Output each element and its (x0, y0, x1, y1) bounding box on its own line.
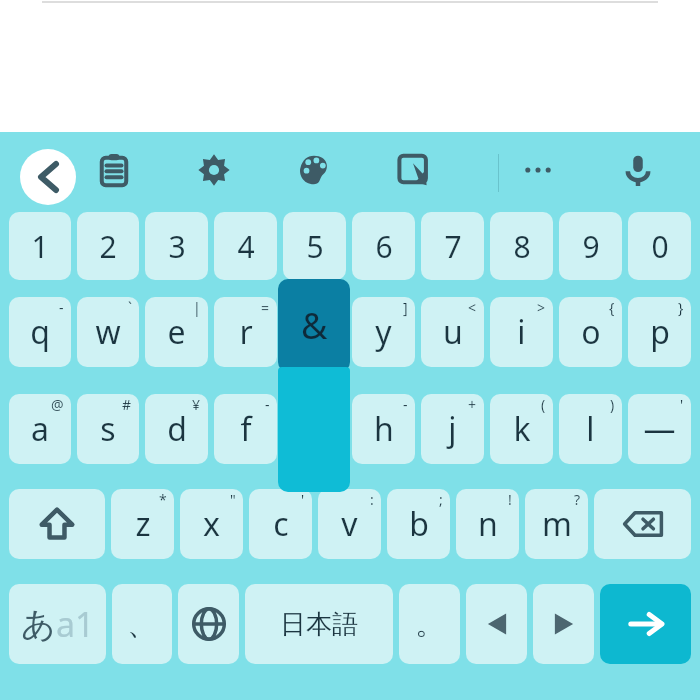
button[interactable]: q (9, 297, 71, 367)
button[interactable]: m (525, 489, 588, 559)
staticText: h (374, 407, 394, 451)
staticText: # (122, 395, 132, 414)
staticText: { (609, 298, 615, 317)
button[interactable]: h (352, 394, 415, 464)
button[interactable]: e (145, 297, 208, 367)
staticText: - (403, 395, 408, 414)
staticText: 5 (306, 226, 324, 267)
button[interactable]: Themes (288, 144, 340, 196)
button[interactable]: z (111, 489, 174, 559)
button[interactable]: x (180, 489, 243, 559)
staticText: u (443, 310, 463, 354)
staticText: l (586, 407, 595, 451)
staticText: z (135, 502, 151, 546)
staticText: @ (51, 395, 64, 414)
button[interactable]: j (421, 394, 484, 464)
button[interactable]: Move cursor right (533, 584, 594, 664)
button[interactable]: Settings (188, 144, 240, 196)
staticText: 1 (31, 226, 49, 267)
button[interactable]: — (628, 394, 691, 464)
button[interactable]: s (77, 394, 139, 464)
staticText: ) (610, 395, 615, 414)
staticText: a1 (56, 601, 95, 647)
staticText: j (448, 407, 457, 451)
button[interactable]: v (318, 489, 381, 559)
button[interactable]: u (421, 297, 484, 367)
staticText: y (375, 310, 392, 354)
staticText: 8 (513, 226, 531, 267)
button[interactable]: d (145, 394, 208, 464)
staticText: b (409, 502, 429, 546)
staticText: r (239, 310, 253, 354)
staticText: x (203, 502, 220, 546)
staticText: q (30, 310, 50, 354)
staticText: ] (403, 298, 408, 317)
staticText: p (650, 310, 670, 354)
button[interactable]: i (490, 297, 553, 367)
button[interactable]: More options (512, 144, 564, 196)
button[interactable]: Shift (9, 489, 105, 559)
button[interactable]: Back (20, 149, 76, 205)
staticText: c (273, 502, 289, 546)
staticText: ? (574, 490, 581, 509)
staticText: i (517, 310, 526, 354)
staticText: — (643, 407, 676, 451)
button[interactable]: 4 (214, 212, 277, 280)
button[interactable]: k (490, 394, 553, 464)
button[interactable]: o (559, 297, 622, 367)
staticText: 4 (237, 226, 255, 267)
button[interactable]: 2 (77, 212, 139, 280)
button[interactable]: Change keyboard (178, 584, 239, 664)
staticText: f (240, 407, 252, 451)
staticText: あ (21, 603, 56, 646)
staticText: a (31, 407, 49, 451)
button[interactable]: あ (9, 584, 106, 664)
button[interactable]: r (214, 297, 277, 367)
staticText: ` (128, 298, 132, 317)
button[interactable]: Enter (600, 584, 691, 664)
button[interactable]: y (352, 297, 415, 367)
staticText: t (309, 310, 321, 354)
button[interactable]: f (214, 394, 277, 464)
staticText: v (341, 502, 358, 546)
button[interactable]: 7 (421, 212, 484, 280)
button[interactable]: 。 (399, 584, 460, 664)
staticText: ( (541, 395, 546, 414)
button[interactable]: 、 (112, 584, 172, 664)
button[interactable]: Voice input (612, 144, 664, 196)
button[interactable]: 6 (352, 212, 415, 280)
staticText: m (542, 502, 572, 546)
staticText: 7 (444, 226, 462, 267)
staticText: = (261, 298, 270, 317)
staticText: - (265, 395, 270, 414)
staticText: d (167, 407, 187, 451)
staticText: 6 (375, 226, 393, 267)
button[interactable]: 5 (283, 212, 346, 280)
staticText: e (167, 310, 186, 354)
button[interactable]: Handwriting (387, 144, 439, 196)
button[interactable]: 9 (559, 212, 622, 280)
button[interactable]: 0 (628, 212, 691, 280)
button[interactable]: c (249, 489, 312, 559)
button[interactable]: n (456, 489, 519, 559)
staticText: * (159, 490, 167, 509)
button[interactable]: l (559, 394, 622, 464)
button[interactable]: 3 (145, 212, 208, 280)
button[interactable]: w (77, 297, 139, 367)
button[interactable]: t (283, 297, 346, 367)
button[interactable]: Backspace (594, 489, 691, 559)
button[interactable]: Clipboard (88, 144, 140, 196)
button[interactable]: 8 (490, 212, 553, 280)
button[interactable]: 1 (9, 212, 71, 280)
staticText: n (478, 502, 498, 546)
staticText: < (468, 298, 477, 317)
button[interactable]: Move cursor left (466, 584, 527, 664)
button[interactable]: b (387, 489, 450, 559)
button[interactable]: a (9, 394, 71, 464)
staticText: " (230, 490, 236, 509)
button[interactable]: 日本語 (245, 584, 393, 664)
button[interactable]: p (628, 297, 691, 367)
staticText: | (193, 298, 201, 317)
